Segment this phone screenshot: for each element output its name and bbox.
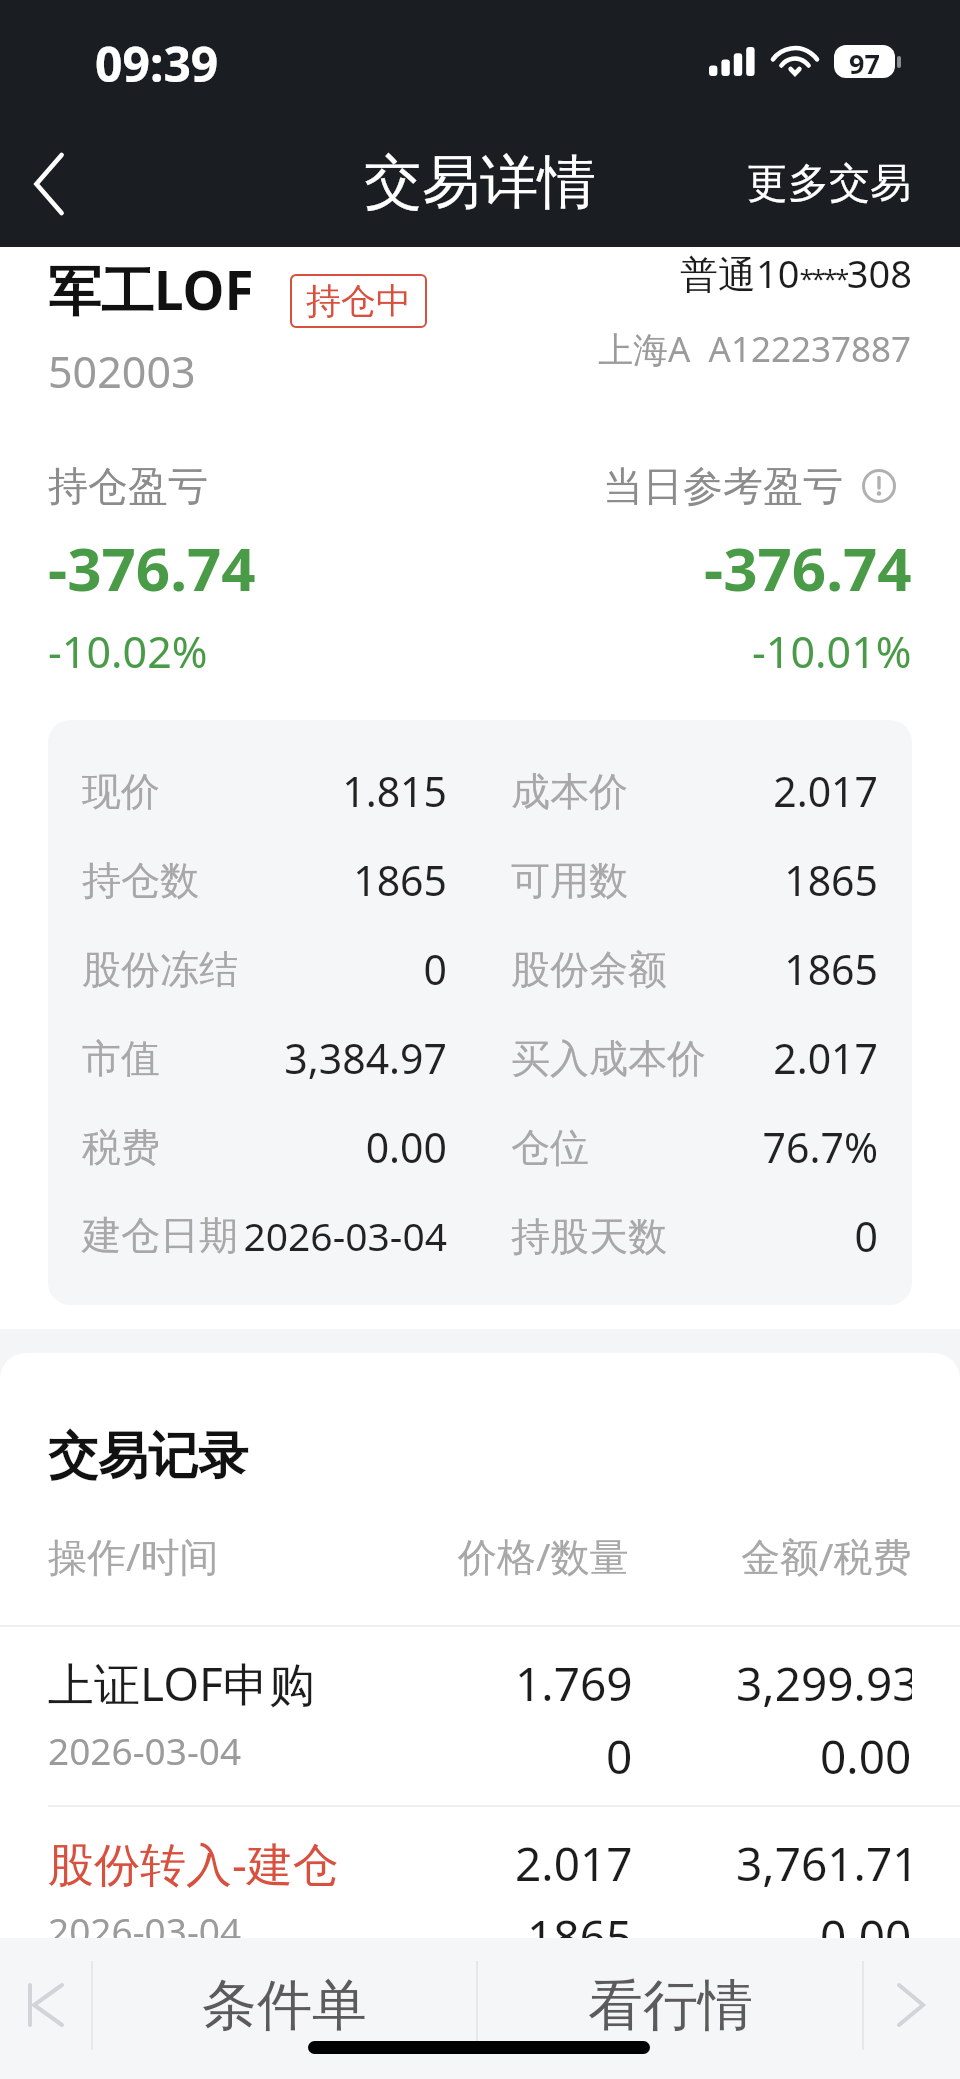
staticText: 股份冻结 bbox=[82, 945, 238, 994]
staticText: 09:39 bbox=[95, 31, 219, 96]
staticText: 1.769 bbox=[515, 1652, 633, 1715]
staticText: 军工LOF bbox=[48, 253, 254, 325]
button[interactable]: About today's reference profit bbox=[862, 469, 896, 503]
staticText: 0.00 bbox=[820, 1725, 912, 1788]
staticText: 成本价 bbox=[511, 767, 628, 816]
staticText: 税费 bbox=[82, 1123, 160, 1172]
staticText: 市值 bbox=[82, 1034, 160, 1083]
staticText: 1865 bbox=[199, 852, 447, 908]
staticText: 1865 bbox=[628, 852, 878, 908]
staticText: 3,761.71 bbox=[736, 1832, 912, 1895]
staticText: 2026-03-04 bbox=[48, 1725, 242, 1775]
staticText: 0 bbox=[238, 941, 447, 997]
staticText: 1865 bbox=[527, 1905, 633, 1938]
staticText: 操作/时间 bbox=[48, 1529, 219, 1582]
staticText: -376.74 bbox=[48, 527, 256, 609]
staticText: 持仓中 bbox=[306, 279, 411, 323]
staticText: 0.00 bbox=[160, 1119, 447, 1175]
staticText: 条件单 bbox=[202, 1971, 367, 2040]
button[interactable]: Next page bbox=[864, 1949, 960, 2061]
staticText: 建仓日期 bbox=[82, 1211, 238, 1260]
staticText: 持股天数 bbox=[511, 1212, 667, 1261]
button[interactable]: Back bbox=[0, 120, 97, 247]
staticText: 76.7% bbox=[589, 1119, 878, 1175]
staticText: 2.017 bbox=[515, 1832, 633, 1895]
staticText: 上海A A122237887 bbox=[598, 325, 912, 373]
staticText: 1.815 bbox=[160, 763, 447, 819]
staticText: 股份余额 bbox=[511, 945, 667, 994]
staticText: 持仓盈亏 bbox=[48, 461, 208, 511]
button[interactable]: 上证LOF申购 bbox=[0, 1627, 960, 1805]
staticText: 现价 bbox=[82, 767, 160, 816]
staticText: 看行情 bbox=[588, 1971, 753, 2040]
staticText: 2026-03-04 bbox=[48, 1905, 242, 1938]
staticText: -10.01% bbox=[752, 622, 912, 681]
button[interactable]: 条件单 bbox=[93, 1949, 476, 2061]
staticText: 交易详情 bbox=[364, 146, 596, 219]
button[interactable]: 更多交易 bbox=[717, 120, 960, 247]
staticText: 3,299.93 bbox=[736, 1652, 912, 1715]
staticText: 3,384.97 bbox=[160, 1030, 447, 1086]
staticText: 0 bbox=[606, 1725, 633, 1788]
staticText: 2026-03-04 bbox=[238, 1209, 447, 1262]
staticText: 仓位 bbox=[511, 1123, 589, 1172]
staticText: 上证LOF申购 bbox=[48, 1652, 315, 1715]
staticText: 2.017 bbox=[706, 1030, 878, 1086]
staticText: 可用数 bbox=[511, 856, 628, 905]
staticText: 普通10****308 bbox=[680, 247, 912, 299]
staticText: 价格/数量 bbox=[458, 1529, 629, 1582]
staticText: 1865 bbox=[667, 941, 878, 997]
staticText: 97 bbox=[849, 45, 880, 78]
staticText: 更多交易 bbox=[747, 158, 911, 210]
staticText: 当日参考盈亏 bbox=[603, 461, 843, 511]
staticText: -10.02% bbox=[48, 622, 208, 681]
button[interactable]: First page bbox=[0, 1949, 91, 2061]
staticText: 502003 bbox=[48, 342, 196, 401]
button[interactable]: 股份转入-建仓 bbox=[0, 1807, 960, 1938]
staticText: 2.017 bbox=[628, 763, 878, 819]
staticText: -376.74 bbox=[704, 527, 912, 609]
staticText: 持仓数 bbox=[82, 856, 199, 905]
staticText: 0.00 bbox=[820, 1905, 912, 1938]
staticText: 股份转入-建仓 bbox=[48, 1832, 339, 1895]
staticText: 交易记录 bbox=[48, 1425, 248, 1488]
staticText: 买入成本价 bbox=[511, 1034, 706, 1083]
staticText: 金额/税费 bbox=[741, 1529, 912, 1582]
button[interactable]: 看行情 bbox=[478, 1949, 862, 2061]
staticText: 0 bbox=[667, 1208, 878, 1264]
